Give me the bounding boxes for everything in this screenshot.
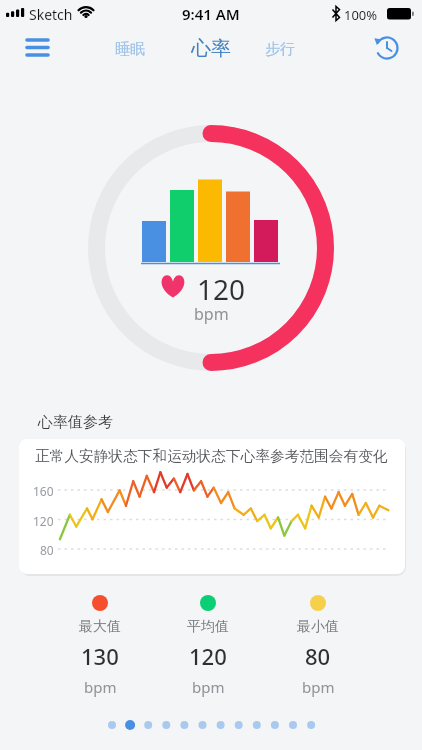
staticText: 正常人安静状态下和运动状态下心率参考范围会有变化 (35, 447, 388, 466)
staticText: 9:41 AM (182, 4, 240, 24)
staticText: 120 (197, 270, 246, 308)
staticText: 120 (189, 641, 227, 671)
button[interactable] (370, 34, 406, 64)
staticText: 160 (33, 483, 54, 499)
staticText: 心率值参考 (38, 413, 113, 432)
staticText: 120 (33, 513, 54, 529)
button[interactable] (19, 439, 405, 574)
staticText: 心率 (191, 36, 231, 61)
staticText: 最小值 (297, 618, 339, 636)
button[interactable]: 睡眠 (105, 36, 155, 62)
button[interactable]: 最大值 (48, 618, 152, 697)
staticText: 80 (40, 542, 54, 558)
button[interactable]: 步行 (255, 36, 305, 62)
button[interactable]: 最小值 (266, 618, 370, 697)
staticText: 130 (81, 641, 119, 671)
staticText: bpm (194, 303, 229, 325)
staticText: 步行 (265, 40, 295, 59)
staticText: bpm (302, 677, 335, 697)
button[interactable]: 平均值 (156, 618, 260, 697)
button[interactable]: 心率 (181, 33, 241, 63)
staticText: 80 (305, 641, 331, 671)
staticText: 睡眠 (115, 40, 145, 59)
staticText: 平均值 (187, 618, 229, 636)
staticText: 100% (344, 6, 378, 24)
staticText: bpm (192, 677, 225, 697)
staticText: bpm (84, 677, 117, 697)
staticText: 最大值 (79, 618, 121, 636)
button[interactable] (16, 34, 60, 64)
staticText: Sketch (29, 5, 73, 24)
